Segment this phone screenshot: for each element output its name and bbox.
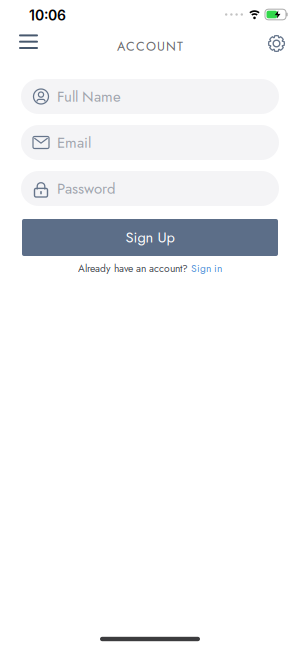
button[interactable]: Sign Up <box>22 219 278 256</box>
button[interactable]: Password <box>21 171 279 206</box>
button[interactable]: Full Name <box>21 79 279 114</box>
button[interactable]: Menu <box>0 38 38 53</box>
button[interactable]: Settings <box>268 37 300 54</box>
button[interactable]: Sign in <box>191 261 222 276</box>
staticText: A C C O U N T <box>117 37 183 55</box>
staticText: 10:06 <box>29 7 66 24</box>
staticText: Password <box>57 178 116 199</box>
staticText: Email <box>57 132 91 153</box>
staticText: Full Name <box>57 86 121 107</box>
staticText: Already have an account? <box>78 261 188 276</box>
button[interactable]: Email <box>21 125 279 160</box>
staticText: Sign Up <box>125 227 174 248</box>
staticText: Sign in <box>191 261 222 276</box>
